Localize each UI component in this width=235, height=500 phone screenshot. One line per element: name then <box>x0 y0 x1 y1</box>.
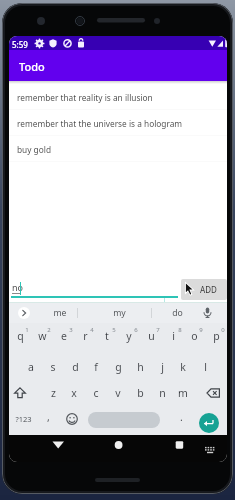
staticText: remember that reality is an illusion <box>17 92 153 103</box>
staticText: h <box>137 360 144 374</box>
staticText: c <box>93 386 99 400</box>
staticText: me <box>53 307 67 319</box>
staticText: 6 <box>134 326 138 334</box>
staticText: ADD <box>200 284 217 295</box>
staticText: r <box>83 329 88 343</box>
staticText: i <box>172 329 175 343</box>
staticText: ?123 <box>15 414 32 424</box>
staticText: 7 <box>156 326 160 334</box>
staticText: 9 <box>199 326 203 334</box>
staticText: 5:59 <box>12 39 28 50</box>
staticText: Todo <box>19 59 45 74</box>
staticText: l <box>204 360 207 374</box>
staticText: d <box>72 360 79 374</box>
staticText: w <box>38 329 47 343</box>
staticText: f <box>94 360 98 374</box>
staticText: m <box>178 386 188 400</box>
staticText: v <box>115 386 121 400</box>
staticText: y <box>126 329 132 343</box>
button[interactable]: me <box>45 303 75 323</box>
staticText: o <box>191 329 198 343</box>
button[interactable]: ADD <box>181 279 227 300</box>
staticText: 0 <box>221 326 225 334</box>
button[interactable]: buy gold <box>9 136 227 162</box>
button[interactable] <box>199 413 219 433</box>
staticText: 3 <box>69 326 73 334</box>
staticText: b <box>137 386 144 400</box>
button[interactable] <box>9 323 227 436</box>
staticText: buy gold <box>17 144 51 155</box>
button[interactable]: remember that reality is an illusion <box>9 84 227 110</box>
button[interactable] <box>18 307 30 319</box>
staticText: x <box>71 386 77 400</box>
staticText: , <box>47 410 50 424</box>
staticText: . <box>180 410 183 424</box>
staticText: n <box>159 386 166 400</box>
staticText: 2 <box>47 326 51 334</box>
staticText: z <box>51 386 56 400</box>
staticText: 5 <box>112 326 116 334</box>
staticText: q <box>17 329 24 343</box>
staticText: k <box>180 360 186 374</box>
staticText: g <box>115 360 122 374</box>
staticText: 8 <box>178 326 182 334</box>
staticText: no <box>12 281 24 293</box>
button[interactable]: remember that the universe is a hologram <box>9 110 227 136</box>
button[interactable]: do <box>162 303 192 323</box>
staticText: p <box>213 329 220 343</box>
staticText: 1 <box>25 326 29 334</box>
staticText: t <box>105 329 109 343</box>
staticText: my <box>113 307 126 319</box>
staticText: remember that the universe is a hologram <box>17 118 183 129</box>
button[interactable] <box>88 412 160 428</box>
button[interactable]: ?123 <box>13 412 33 426</box>
staticText: 4 <box>90 326 94 334</box>
staticText: e <box>61 329 67 343</box>
staticText: j <box>161 360 164 374</box>
button[interactable]: my <box>104 303 134 323</box>
staticText: a <box>28 360 34 374</box>
staticText: u <box>148 329 155 343</box>
staticText: do <box>172 307 183 319</box>
staticText: s <box>50 360 56 374</box>
